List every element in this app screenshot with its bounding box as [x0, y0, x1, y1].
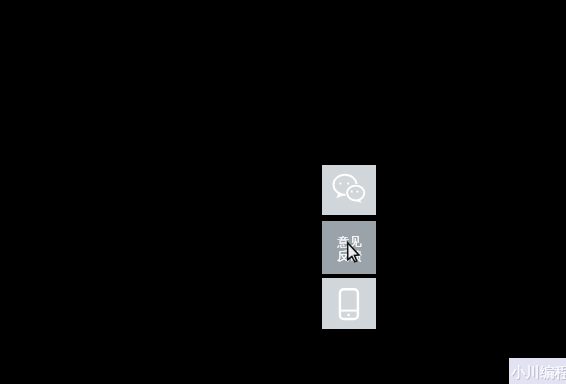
button[interactable]: Device: [322, 278, 376, 329]
staticText: 小川编程: [512, 364, 566, 382]
button[interactable]: 意见反馈: [322, 221, 376, 274]
staticText: 意见反馈: [337, 234, 362, 264]
staticText: 小川编程: [511, 363, 566, 381]
button[interactable]: WeChat: [322, 165, 376, 215]
